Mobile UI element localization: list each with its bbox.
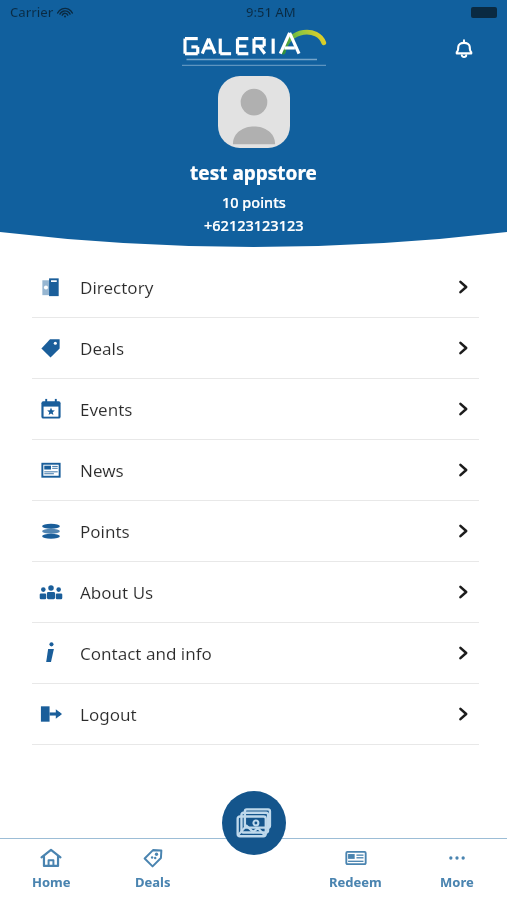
staticText: Carrier bbox=[10, 3, 54, 21]
staticText: 10 points bbox=[222, 192, 286, 212]
button[interactable]: Redeem bbox=[305, 838, 406, 900]
staticText: About Us bbox=[80, 581, 154, 604]
button[interactable]: Deals bbox=[0, 318, 507, 378]
button[interactable]: Directory bbox=[0, 257, 507, 317]
button[interactable]: Deals bbox=[102, 838, 204, 900]
staticText: Deals bbox=[135, 873, 171, 891]
staticText: +62123123123 bbox=[204, 215, 304, 235]
button[interactable]: Gallery bbox=[222, 791, 286, 855]
button[interactable]: Home bbox=[0, 838, 102, 900]
button[interactable]: More bbox=[406, 838, 507, 900]
button[interactable]: Points bbox=[0, 501, 507, 561]
button[interactable]: Contact and info bbox=[0, 623, 507, 683]
staticText: Deals bbox=[80, 337, 125, 360]
staticText: Redeem bbox=[329, 873, 382, 891]
button[interactable]: Logout bbox=[0, 684, 507, 744]
staticText: Events bbox=[80, 398, 133, 421]
staticText: Directory bbox=[80, 276, 154, 299]
staticText: Points bbox=[80, 520, 130, 543]
staticText: test appstore bbox=[190, 160, 317, 186]
staticText: Contact and info bbox=[80, 642, 212, 665]
button[interactable]: Notifications bbox=[445, 30, 483, 68]
button[interactable]: News bbox=[0, 440, 507, 500]
button[interactable]: Events bbox=[0, 379, 507, 439]
staticText: More bbox=[440, 873, 474, 891]
staticText: News bbox=[80, 459, 124, 482]
staticText: Home bbox=[32, 873, 71, 891]
button[interactable]: About Us bbox=[0, 562, 507, 622]
staticText: Logout bbox=[80, 703, 137, 726]
staticText: 9:51 AM bbox=[246, 3, 296, 21]
